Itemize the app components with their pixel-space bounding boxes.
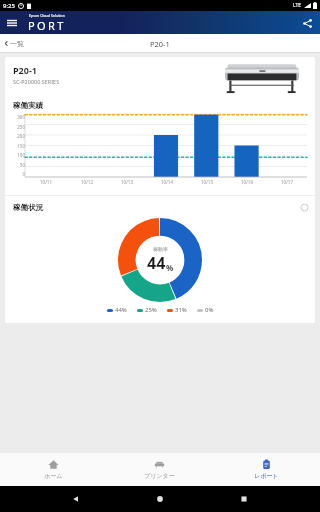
staticText: 0%: [205, 306, 214, 314]
staticText: 稼働実績: [13, 101, 43, 110]
staticText: P20-1: [13, 64, 37, 76]
button[interactable]: Home: [152, 491, 168, 507]
staticText: レポート: [254, 472, 279, 480]
staticText: 300: [17, 114, 25, 120]
staticText: PORT: [28, 18, 66, 33]
staticText: 250: [17, 124, 25, 130]
button[interactable]: プリンター: [106, 453, 213, 486]
staticText: 44%: [115, 306, 127, 314]
staticText: 稼動率: [153, 246, 168, 252]
staticText: 10/11: [40, 179, 52, 185]
staticText: プリンター: [144, 472, 175, 480]
staticText: 一覧: [10, 39, 24, 48]
staticText: 10/13: [121, 179, 133, 185]
staticText: 10/14: [161, 179, 173, 185]
button[interactable]: レポート: [213, 453, 320, 486]
button[interactable]: ホーム: [0, 453, 106, 486]
button[interactable]: Share: [298, 14, 316, 32]
button[interactable]: Help: [298, 201, 310, 213]
button[interactable]: 一覧: [0, 34, 30, 53]
staticText: SC-P20000 SERIES: [13, 78, 60, 85]
staticText: 10/12: [81, 179, 93, 185]
staticText: 25%: [145, 306, 157, 314]
button[interactable]: Back: [68, 491, 84, 507]
staticText: Epson Cloud Solution: [29, 13, 65, 18]
staticText: 10/15: [201, 179, 213, 185]
staticText: 10/16: [241, 179, 253, 185]
staticText: 稼働状況: [13, 203, 43, 212]
staticText: 10/17: [281, 179, 293, 185]
staticText: 150: [17, 143, 25, 149]
staticText: ホーム: [44, 472, 63, 480]
staticText: P20-1: [150, 39, 170, 49]
staticText: %: [166, 262, 174, 273]
staticText: 9:25: [3, 2, 15, 10]
staticText: 44: [147, 252, 166, 274]
staticText: 31%: [175, 306, 187, 314]
staticText: 200: [17, 133, 25, 139]
button[interactable]: Recents: [236, 491, 252, 507]
staticText: 100: [17, 152, 25, 158]
staticText: 0: [22, 171, 25, 177]
button[interactable]: Menu: [3, 14, 21, 32]
staticText: 50: [19, 162, 25, 168]
staticText: LTE: [293, 2, 302, 9]
